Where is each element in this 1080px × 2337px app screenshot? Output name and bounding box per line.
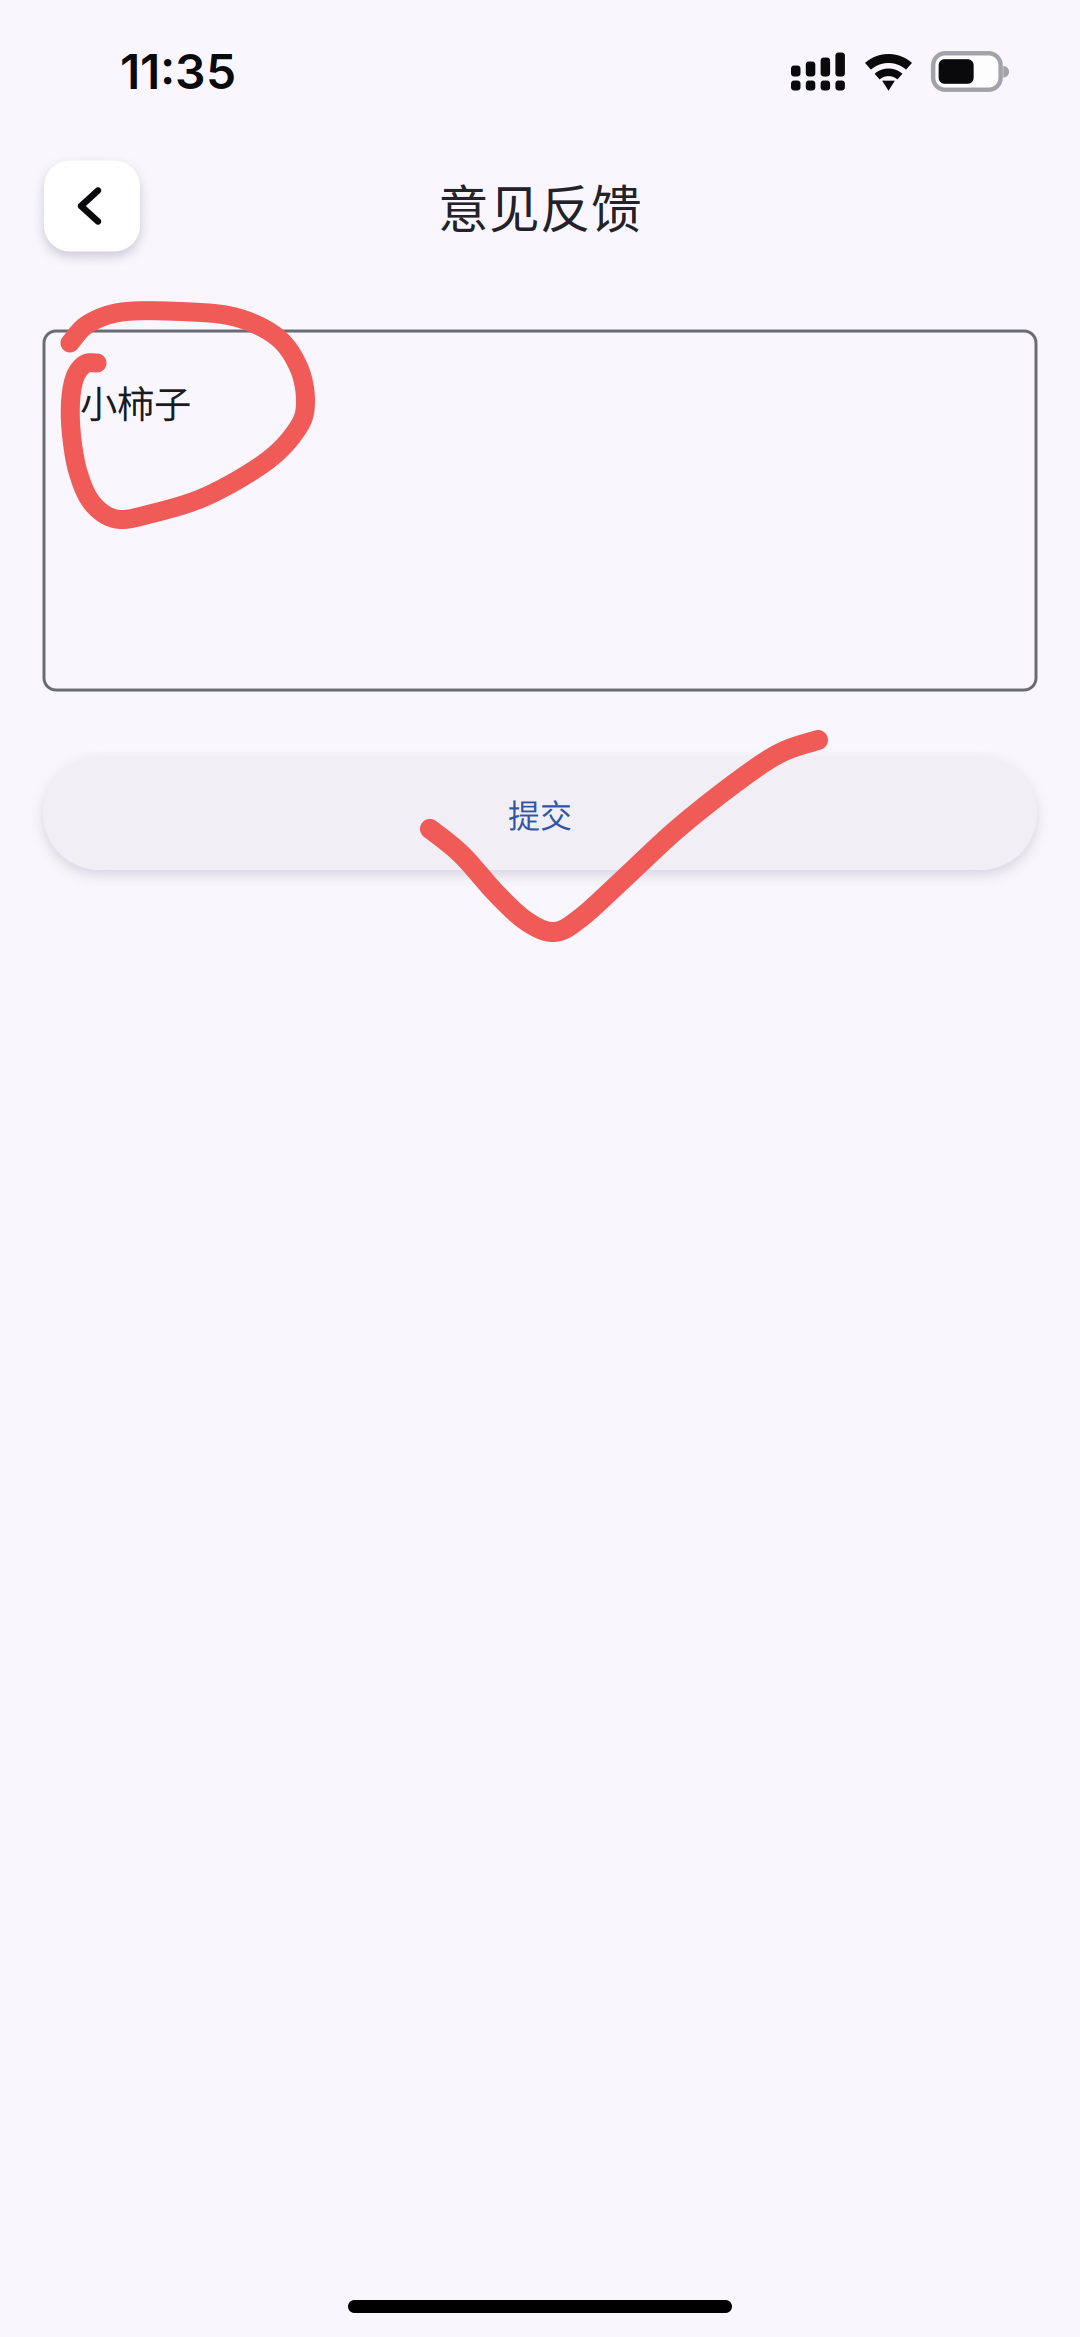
button[interactable]: 小柿子: [44, 331, 1036, 690]
staticText: 意见反馈: [438, 169, 642, 243]
staticText: 11:35: [120, 42, 236, 101]
button[interactable]: Back: [44, 160, 140, 251]
staticText: 小柿子: [80, 375, 191, 429]
button[interactable]: 提交: [43, 757, 1037, 870]
staticText: 提交: [508, 790, 572, 837]
